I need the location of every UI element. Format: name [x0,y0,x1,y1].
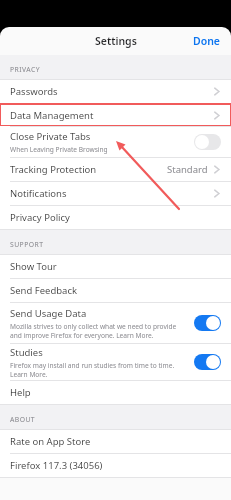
button[interactable]: Help [0,381,231,404]
button[interactable]: Studies [194,354,221,370]
staticText: Passwords [10,85,58,98]
button[interactable]: Close Private Tabs [0,127,231,157]
staticText: Tracking Protection [10,163,97,176]
button[interactable]: Studies [0,344,231,380]
staticText: ABOUT [10,415,36,424]
staticText: Send Usage Data [10,307,87,320]
staticText: When Leaving Private Browsing [10,145,108,154]
button[interactable]: Privacy Policy [0,206,231,229]
button[interactable]: Done [183,28,231,54]
staticText: Show Tour [10,260,57,273]
staticText: Studies [10,346,43,359]
button[interactable]: Data Management [0,104,231,126]
staticText: Firefox 117.3 (34056) [10,459,103,472]
staticText: Data Management [10,109,94,122]
button[interactable]: Send Feedback [0,279,231,302]
button[interactable]: Notifications [0,182,231,205]
staticText: Settings [95,34,137,48]
staticText: Done [193,34,221,48]
staticText: Privacy Policy [10,211,70,224]
staticText: Help [10,386,31,399]
staticText: Firefox may install and run studies from… [10,361,186,379]
button[interactable]: Send Usage Data [194,315,221,331]
staticText: Standard [167,163,208,176]
staticText: Close Private Tabs [10,130,91,143]
button[interactable]: Show Tour [0,255,231,278]
button[interactable]: Rate on App Store [0,430,231,453]
staticText: Notifications [10,187,67,200]
staticText: SUPPORT [10,240,44,249]
staticText: Mozilla strives to only collect what we … [10,322,186,340]
button[interactable]: Firefox 117.3 (34056) [0,454,231,477]
staticText: Send Feedback [10,284,78,297]
staticText: PRIVACY [10,65,40,74]
button[interactable]: Tracking Protection [0,158,231,181]
button[interactable]: Send Usage Data [0,303,231,343]
button[interactable]: Close Private Tabs [194,134,221,150]
button[interactable]: Passwords [0,80,231,103]
staticText: Rate on App Store [10,435,91,448]
